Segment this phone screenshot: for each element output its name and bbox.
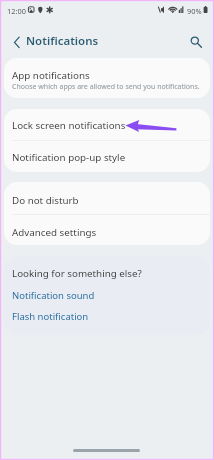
staticText: Notifications xyxy=(26,33,99,49)
staticText: Notification pop-up style xyxy=(12,151,126,164)
button[interactable]: Notification pop-up style xyxy=(4,141,210,172)
staticText: Choose which apps are allowed to send yo… xyxy=(12,82,200,92)
staticText: Flash notification xyxy=(12,310,89,323)
button[interactable]: Flash notification xyxy=(12,310,89,323)
staticText: 12:00 xyxy=(7,6,26,16)
staticText: App notifications xyxy=(12,69,90,82)
staticText: Looking for something else? xyxy=(12,267,142,280)
button[interactable]: Notification sound xyxy=(12,289,95,302)
staticText: Notification sound xyxy=(12,289,95,302)
button[interactable]: App notifications xyxy=(4,58,210,98)
staticText: Advanced settings xyxy=(12,226,97,239)
button[interactable]: Do not disturb xyxy=(4,182,210,214)
button[interactable]: Lock screen notifications xyxy=(4,109,210,140)
staticText: 90% xyxy=(187,6,202,16)
button[interactable]: Advanced settings xyxy=(4,215,210,245)
staticText: Lock screen notifications xyxy=(12,119,126,132)
button[interactable]: Search xyxy=(186,30,206,50)
staticText: Do not disturb xyxy=(12,194,79,207)
button[interactable]: Back xyxy=(7,30,27,50)
